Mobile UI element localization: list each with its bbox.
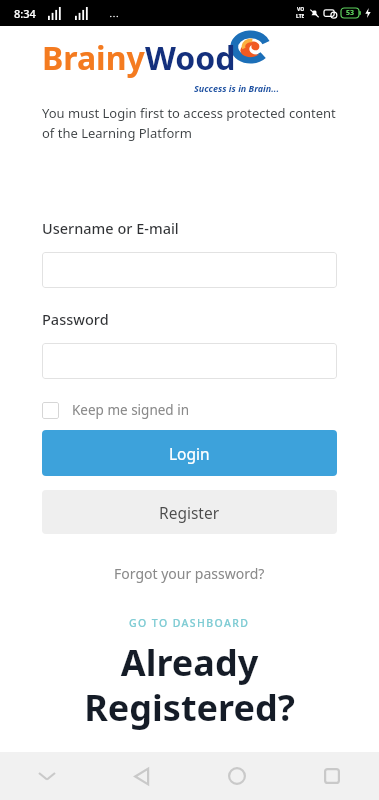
staticText: LTE: [296, 13, 305, 20]
staticText: Register: [159, 502, 220, 523]
button[interactable]: Register: [42, 490, 337, 534]
staticText: Already Registered?: [42, 638, 337, 731]
staticText: Forgot your password?: [114, 564, 265, 583]
staticText: Success is in Brain...: [194, 82, 279, 94]
button[interactable]: Home: [189, 752, 284, 800]
staticText: Username or E-mail: [42, 218, 179, 238]
button[interactable]: [42, 252, 337, 288]
button[interactable]: Forgot your password?: [42, 564, 337, 583]
button[interactable]: [42, 343, 337, 379]
button[interactable]: Hide keyboard: [0, 752, 94, 800]
staticText: 53: [346, 8, 355, 18]
staticText: 8:34: [14, 6, 36, 21]
button[interactable]: Back: [94, 752, 189, 800]
staticText: Brainy: [42, 36, 145, 80]
button[interactable]: Keep me signed in: [42, 401, 189, 419]
staticText: Password: [42, 309, 109, 329]
staticText: VO: [297, 6, 305, 13]
button[interactable]: Login: [42, 430, 337, 476]
staticText: Wood: [145, 36, 236, 80]
staticText: GO TO DASHBOARD: [129, 616, 250, 630]
staticText: Login: [169, 443, 210, 464]
button[interactable]: Recent apps: [284, 752, 379, 800]
button[interactable]: GO TO DASHBOARD: [42, 616, 337, 630]
staticText: You must Login first to access protected…: [42, 104, 337, 142]
staticText: Keep me signed in: [72, 401, 189, 419]
